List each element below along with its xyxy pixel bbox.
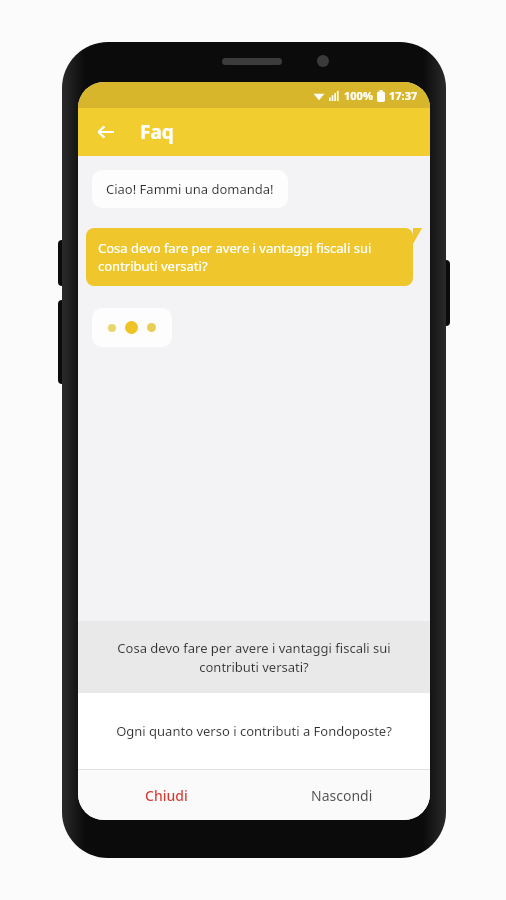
button[interactable]: Ciao! Fammi una domanda! bbox=[92, 170, 288, 208]
button[interactable]: Nascondi bbox=[254, 770, 430, 820]
staticText: Chiudi bbox=[145, 786, 188, 805]
staticText: Faq bbox=[140, 119, 174, 145]
button[interactable]: Cosa devo fare per avere i vantaggi fisc… bbox=[78, 621, 430, 693]
button[interactable]: Ogni quanto verso i contributi a Fondopo… bbox=[78, 693, 430, 769]
button[interactable] bbox=[92, 308, 172, 347]
staticText: 100% bbox=[344, 88, 373, 103]
staticText: 17:37 bbox=[389, 88, 418, 103]
button[interactable]: Back bbox=[86, 112, 126, 152]
button[interactable]: Chiudi bbox=[78, 770, 254, 820]
button[interactable]: Cosa devo fare per avere i vantaggi fisc… bbox=[86, 228, 413, 286]
staticText: Nascondi bbox=[311, 786, 373, 805]
staticText: Ciao! Fammi una domanda! bbox=[106, 180, 274, 198]
staticText: Ogni quanto verso i contributi a Fondopo… bbox=[116, 722, 392, 740]
staticText: Cosa devo fare per avere i vantaggi fisc… bbox=[98, 239, 401, 275]
staticText: Cosa devo fare per avere i vantaggi fisc… bbox=[106, 639, 402, 676]
